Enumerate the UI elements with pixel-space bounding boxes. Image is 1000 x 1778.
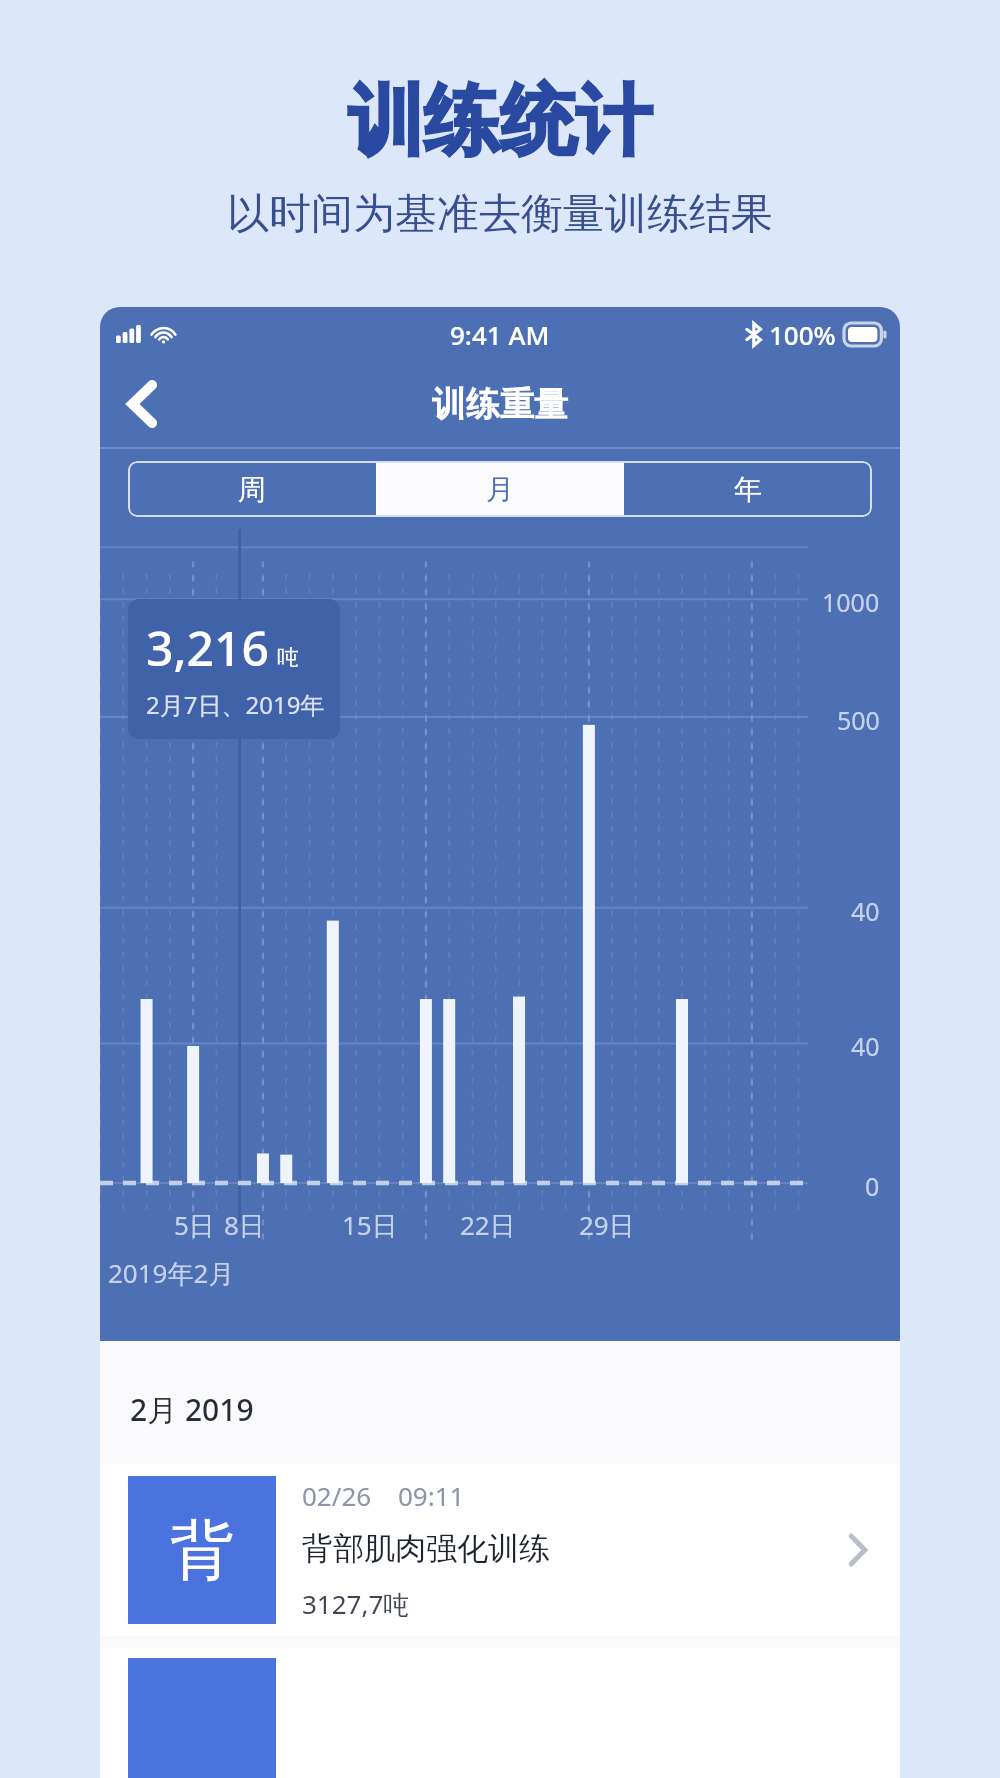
- button[interactable]: 周: [128, 461, 376, 517]
- staticText: 1000: [822, 585, 880, 619]
- staticText: 29日: [579, 1207, 635, 1243]
- staticText: 年: [734, 472, 762, 507]
- staticText: 背: [170, 1510, 234, 1591]
- staticText: 02/26: [302, 1478, 372, 1513]
- staticText: 吨: [277, 644, 299, 672]
- staticText: 周: [238, 472, 266, 507]
- staticText: 100%: [769, 317, 836, 352]
- staticText: 22日: [460, 1207, 516, 1243]
- staticText: 0: [865, 1169, 880, 1203]
- button[interactable]: [100, 1648, 900, 1778]
- button[interactable]: 月: [376, 461, 624, 517]
- staticText: 40: [851, 1029, 880, 1063]
- staticText: 2月7日、2019年: [146, 688, 325, 721]
- staticText: 以时间为基准去衡量训练结果: [0, 188, 1000, 241]
- staticText: 2019年2月: [108, 1255, 235, 1291]
- button[interactable]: Back: [106, 368, 178, 440]
- staticText: 背部肌肉强化训练: [302, 1529, 550, 1568]
- staticText: 9:41 AM: [450, 317, 550, 352]
- staticText: 2月 2019: [130, 1389, 254, 1430]
- button[interactable]: 背: [100, 1464, 900, 1636]
- button[interactable]: 年: [624, 461, 872, 517]
- staticText: 09:11: [398, 1478, 465, 1513]
- staticText: 15日: [342, 1207, 398, 1243]
- staticText: 8日: [224, 1207, 265, 1243]
- staticText: 训练重量: [432, 383, 568, 426]
- staticText: 40: [851, 894, 880, 928]
- staticText: 3,216: [146, 615, 269, 680]
- staticText: 3127,7吨: [302, 1586, 410, 1622]
- staticText: 500: [837, 703, 880, 737]
- staticText: 5日: [174, 1207, 215, 1243]
- staticText: 训练统计: [0, 74, 1000, 170]
- staticText: 月: [486, 472, 514, 507]
